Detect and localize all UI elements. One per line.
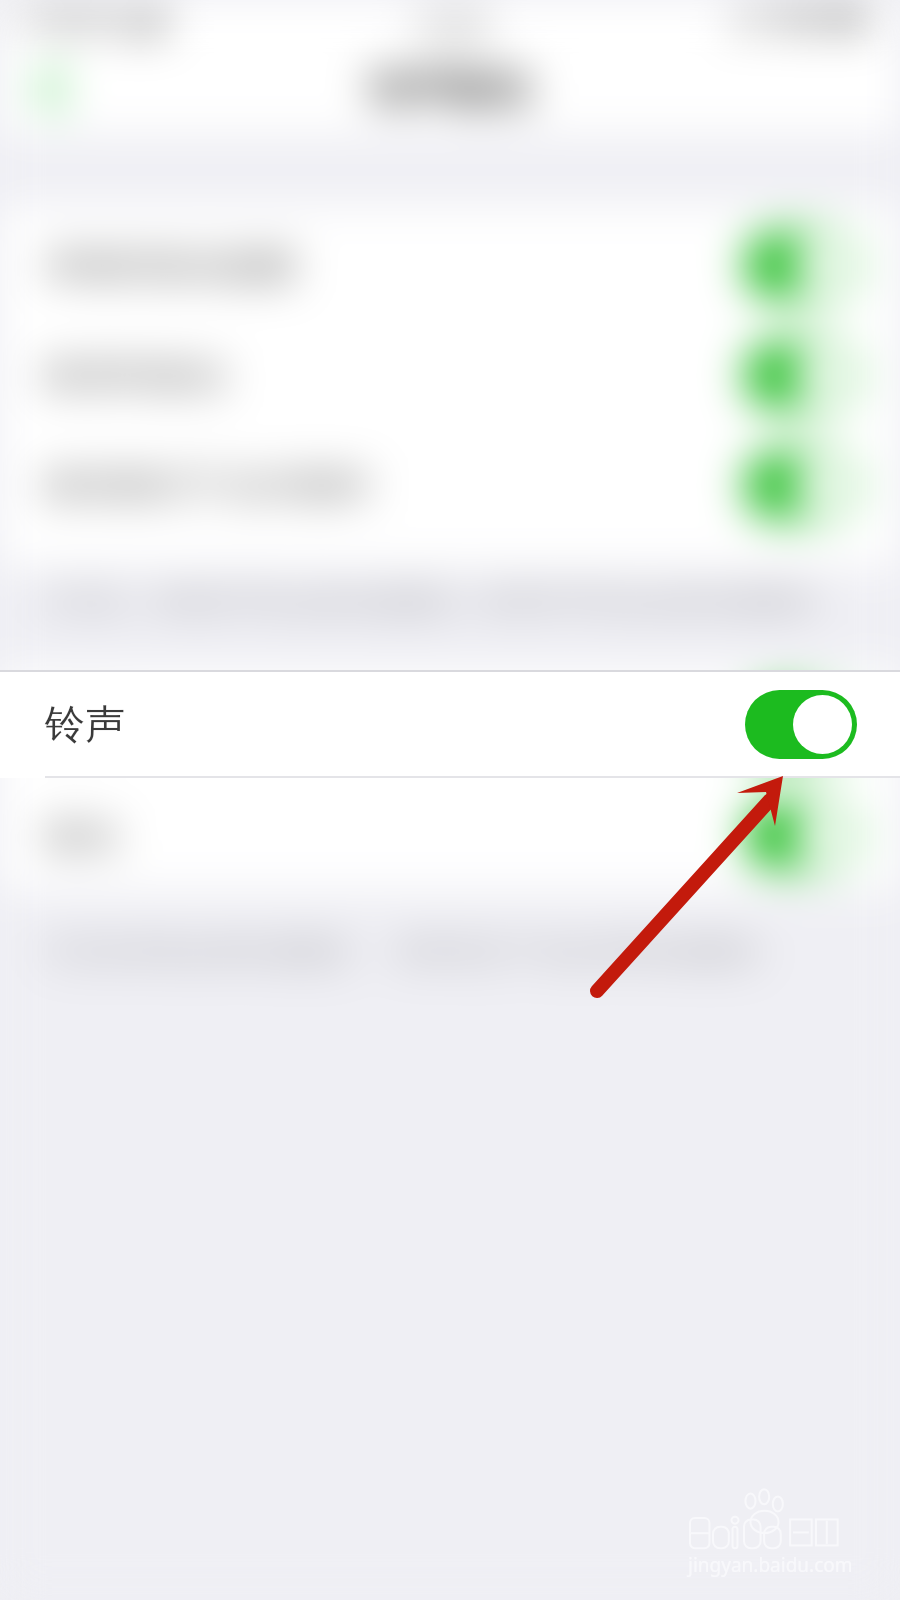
staticText: 静音时振动 — [45, 353, 225, 398]
button[interactable]: 静音模式下允许闹钟 — [0, 430, 900, 540]
button[interactable]: 铃声 — [0, 670, 900, 778]
button[interactable]: Switch, on — [745, 691, 857, 760]
button[interactable]: Switch, on — [745, 341, 857, 410]
staticText: 静音模式下允许闹钟 — [45, 463, 369, 508]
button[interactable]: Switch, on — [745, 231, 857, 300]
button[interactable]: Ringtone switch, on — [745, 690, 857, 759]
button[interactable]: 铃声 — [0, 670, 900, 780]
staticText: 振动 — [45, 813, 117, 858]
staticText: 铃声振动 — [370, 64, 530, 114]
button[interactable]: 静音时振动 — [0, 320, 900, 430]
button[interactable]: Switch, on — [745, 451, 857, 520]
staticText: 开启后来电会响铃提醒您 静音状态下也会有震动提醒您 — [45, 931, 761, 969]
staticText: 铃声 — [45, 703, 117, 748]
staticText: jingyan.baidu.com — [688, 1552, 853, 1578]
button[interactable]: 振动 — [0, 780, 900, 890]
button[interactable]: Switch, on — [745, 801, 857, 870]
button[interactable]: 来电时振动提醒 — [0, 210, 900, 320]
button[interactable]: Back — [22, 56, 90, 122]
staticText: 12:02 — [412, 4, 489, 45]
staticText: 来电时振动提醒 — [45, 243, 297, 288]
staticText: 铃声 — [45, 699, 125, 749]
staticText: 中国移动 — [18, 3, 130, 38]
